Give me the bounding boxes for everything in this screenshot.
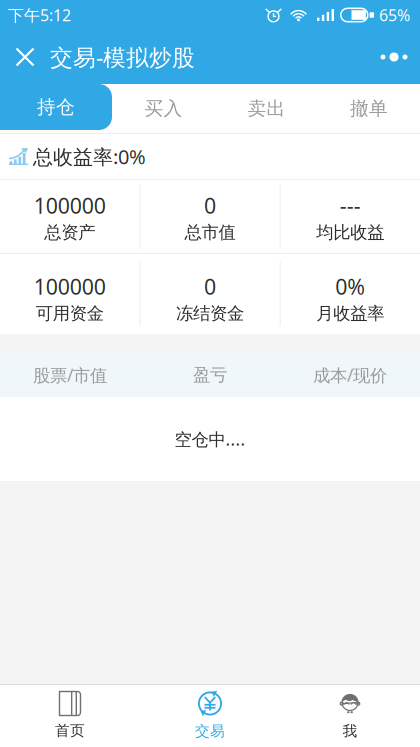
staticText: 股票/市值	[33, 363, 107, 386]
staticText: 盈亏	[193, 364, 227, 386]
staticText: 空仓中....	[174, 427, 245, 450]
button[interactable]: More options	[368, 30, 420, 84]
button[interactable]: 持仓	[0, 84, 112, 133]
button[interactable]: 我	[280, 684, 420, 747]
staticText: 撤单	[350, 97, 388, 120]
staticText: 可用资金	[36, 303, 104, 324]
staticText: 成本/现价	[313, 363, 387, 386]
button[interactable]: 买入	[112, 84, 215, 133]
staticText: 下午5:12	[8, 4, 71, 26]
staticText: 首页	[55, 721, 85, 739]
staticText: 均比收益	[316, 222, 384, 243]
button[interactable]: 首页	[0, 684, 140, 747]
staticText: 0	[204, 272, 216, 301]
staticText: 65%	[379, 4, 410, 26]
button[interactable]: 卖出	[215, 84, 318, 133]
staticText: 100000	[34, 191, 106, 220]
staticText: 0%	[335, 272, 365, 301]
staticText: 总市值	[184, 222, 235, 243]
button[interactable]: Close	[0, 30, 50, 84]
staticText: 交易	[195, 722, 225, 740]
staticText: 月收益率	[316, 303, 384, 324]
staticText: 卖出	[247, 97, 285, 120]
staticText: 持仓	[37, 95, 75, 118]
staticText: ---	[340, 191, 361, 220]
staticText: 交易-模拟炒股	[50, 42, 195, 72]
button[interactable]: 交易	[140, 684, 280, 747]
button[interactable]: 撤单	[318, 84, 420, 133]
staticText: 总收益率:0%	[33, 143, 146, 170]
staticText: 0	[204, 191, 216, 220]
staticText: 我	[342, 722, 357, 740]
staticText: 冻结资金	[176, 303, 244, 324]
staticText: 100000	[34, 272, 106, 301]
staticText: 买入	[144, 97, 182, 120]
staticText: 总资产	[44, 222, 95, 243]
